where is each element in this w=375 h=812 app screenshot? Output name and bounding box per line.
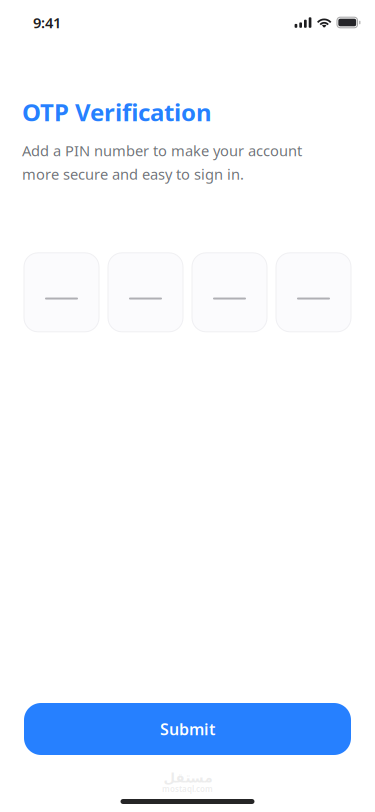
staticText: 9:41	[33, 13, 61, 32]
staticText: Add a PIN number to make your account	[22, 141, 302, 160]
staticText: مستقل	[163, 770, 212, 785]
button[interactable]: Submit	[24, 703, 351, 755]
staticText: OTP Verification	[22, 96, 212, 128]
staticText: more secure and easy to sign in.	[22, 164, 244, 184]
staticText: mostaql.com	[162, 784, 213, 794]
button[interactable]: PIN digit	[192, 253, 267, 332]
button[interactable]: PIN digit	[276, 253, 351, 332]
button[interactable]: PIN digit	[24, 253, 99, 332]
staticText: Submit	[160, 718, 215, 740]
button[interactable]: PIN digit	[108, 253, 183, 332]
